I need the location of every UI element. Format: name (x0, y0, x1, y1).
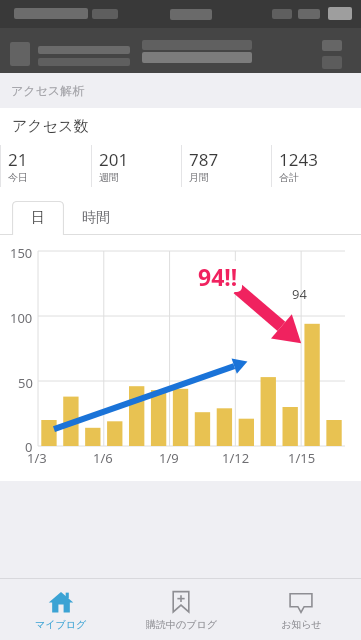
button[interactable]: お知らせ (241, 579, 361, 640)
staticText: 1/3 (27, 449, 47, 467)
button[interactable]: 21 (0, 145, 91, 187)
staticText: 0 (25, 438, 33, 456)
staticText: 150 (10, 244, 33, 262)
staticText: 月間 (189, 171, 209, 184)
staticText: 1/15 (288, 449, 316, 467)
staticText: 1/9 (159, 449, 179, 467)
staticText: 1/12 (222, 449, 250, 467)
staticText: アクセス数 (12, 117, 89, 136)
button[interactable]: 時間 (64, 201, 128, 235)
staticText: 94!! (198, 261, 238, 292)
staticText: お知らせ (281, 618, 322, 631)
staticText: 787 (189, 148, 219, 171)
staticText: 100 (10, 309, 33, 327)
button[interactable]: 日 (12, 201, 64, 235)
staticText: 購読中のブログ (146, 618, 217, 631)
staticText: 201 (99, 148, 129, 171)
button[interactable]: 787 (181, 145, 271, 187)
staticText: 21 (8, 148, 28, 171)
button[interactable]: 1243 (271, 145, 361, 187)
button[interactable]: マイブログ (0, 579, 121, 640)
staticText: アクセス解析 (11, 83, 85, 98)
staticText: 合計 (279, 171, 299, 184)
button[interactable]: 購読中のブログ (121, 579, 241, 640)
staticText: 50 (18, 374, 33, 392)
staticText: 時間 (82, 209, 110, 227)
staticText: 94 (292, 285, 307, 303)
staticText: 週間 (99, 171, 119, 184)
staticText: 1/6 (93, 449, 113, 467)
button[interactable]: 201 (91, 145, 181, 187)
staticText: マイブログ (35, 618, 87, 631)
staticText: 1243 (279, 148, 318, 171)
staticText: 日 (31, 209, 45, 227)
staticText: 今日 (8, 171, 28, 184)
